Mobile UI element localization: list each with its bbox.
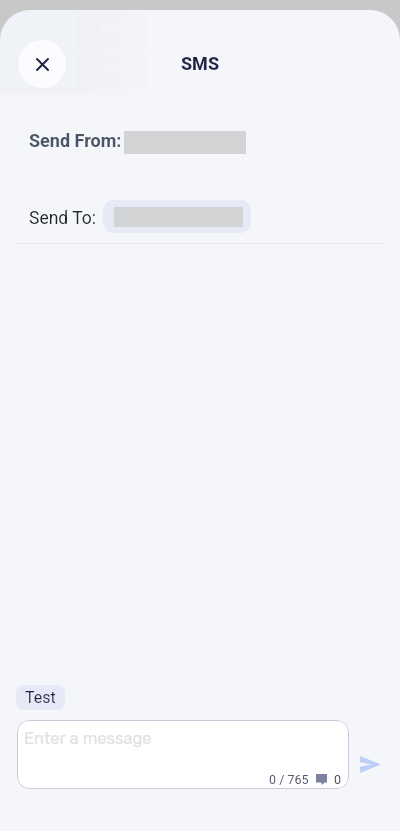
staticText: 0 / 765 — [269, 772, 309, 787]
button[interactable]: Close — [18, 40, 66, 88]
staticText: Enter a message — [24, 729, 152, 749]
button[interactable]: Enter a message — [17, 720, 349, 789]
button[interactable]: Test — [16, 685, 65, 710]
staticText: 0 — [334, 772, 342, 787]
staticText: Send From: — [29, 130, 122, 151]
staticText: SMS — [0, 53, 400, 74]
button[interactable] — [103, 200, 251, 233]
button[interactable]: Send — [350, 744, 390, 784]
staticText: Test — [25, 688, 56, 707]
staticText: Send To: — [29, 208, 97, 229]
